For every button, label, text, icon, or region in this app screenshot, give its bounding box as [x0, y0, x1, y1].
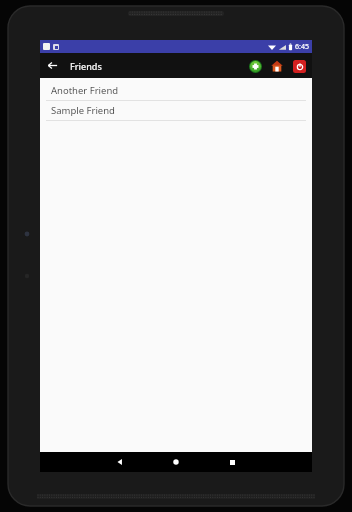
staticText: Sample Friend: [51, 104, 115, 117]
staticText: 6:45: [295, 42, 309, 52]
button[interactable]: Recent apps: [204, 452, 260, 472]
button[interactable]: Home: [267, 56, 287, 76]
button[interactable]: Sample Friend: [40, 101, 312, 121]
button[interactable]: Add friend: [245, 56, 265, 76]
button[interactable]: Another Friend: [40, 81, 312, 101]
button[interactable]: Back: [92, 452, 148, 472]
staticText: Friends: [70, 60, 102, 72]
button[interactable]: Log out: [289, 56, 309, 76]
button[interactable]: Back: [40, 53, 65, 78]
button[interactable]: Home: [148, 452, 204, 472]
staticText: Another Friend: [51, 84, 119, 97]
